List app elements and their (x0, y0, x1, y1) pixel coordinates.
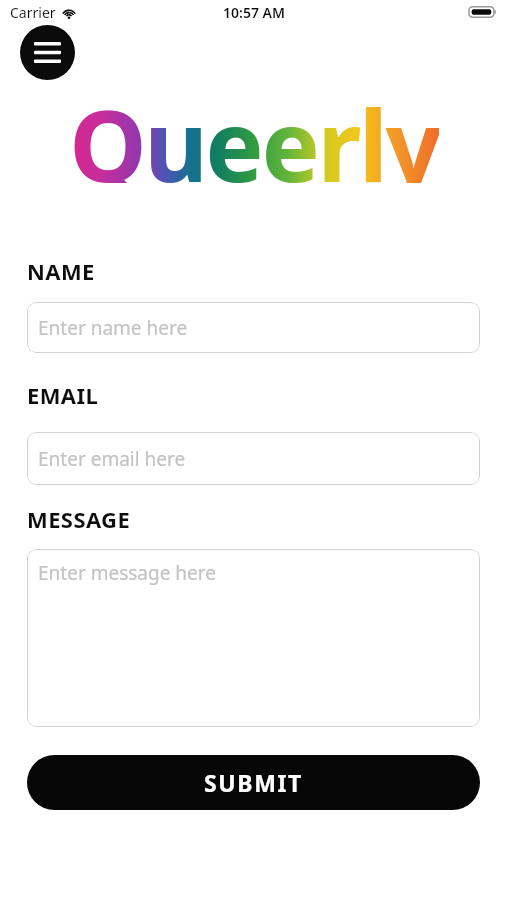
staticText: Enter name here (38, 315, 188, 341)
staticText: NAME (27, 256, 95, 286)
staticText: Enter message here (38, 560, 216, 586)
staticText: Queerly (69, 77, 439, 183)
staticText: MESSAGE (27, 504, 131, 534)
button[interactable]: SUBMIT (27, 755, 480, 810)
button[interactable]: Enter email here (27, 432, 480, 485)
staticText: SUBMIT (204, 767, 303, 798)
staticText: 10:57 AM (223, 3, 285, 22)
button[interactable]: Open navigation menu (20, 25, 75, 80)
staticText: Carrier (10, 3, 56, 22)
button[interactable]: Enter message here (27, 549, 480, 727)
staticText: Enter email here (38, 446, 186, 472)
button[interactable]: Enter name here (27, 302, 480, 353)
staticText: EMAIL (27, 380, 99, 410)
